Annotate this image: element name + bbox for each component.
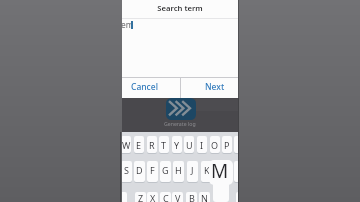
staticText: Y <box>174 139 180 151</box>
button[interactable]: Y <box>172 136 182 153</box>
button[interactable]: F <box>147 161 158 182</box>
button[interactable]: W <box>122 136 131 153</box>
staticText: Z <box>138 192 144 202</box>
staticText: N <box>201 192 208 202</box>
button[interactable]: N <box>199 192 210 202</box>
button[interactable]: B <box>186 192 197 202</box>
button[interactable]: P <box>222 136 232 153</box>
button[interactable] <box>166 98 196 120</box>
button[interactable] <box>234 161 238 182</box>
staticText: O <box>211 139 219 151</box>
button[interactable]: T <box>159 136 169 153</box>
staticText: I <box>200 139 204 151</box>
button[interactable]: I <box>197 136 207 153</box>
staticText: J <box>191 164 194 176</box>
staticText: Cancel <box>131 81 158 93</box>
button[interactable]: X <box>147 192 158 202</box>
staticText: R <box>149 139 155 151</box>
staticText: em <box>122 19 134 31</box>
staticText: G <box>162 164 169 176</box>
button[interactable]: V <box>172 192 183 202</box>
staticText: F <box>150 164 155 176</box>
staticText: P <box>224 139 230 151</box>
staticText: T <box>161 139 167 151</box>
button[interactable] <box>234 136 238 153</box>
staticText: U <box>186 139 193 151</box>
staticText: W <box>122 139 131 151</box>
button[interactable]: C <box>160 192 171 202</box>
button[interactable]: U <box>184 136 194 153</box>
button[interactable]: Cancel <box>124 81 164 93</box>
staticText: E <box>136 139 142 151</box>
button[interactable]: H <box>173 161 184 182</box>
button[interactable]: K <box>201 161 212 182</box>
button[interactable]: J <box>187 161 198 182</box>
button[interactable]: G <box>160 161 171 182</box>
staticText: Search term <box>157 3 203 13</box>
button[interactable]: Z <box>135 192 146 202</box>
staticText: M <box>211 158 229 183</box>
button[interactable]: E <box>134 136 144 153</box>
staticText: D <box>136 164 143 176</box>
staticText: K <box>204 164 210 176</box>
button[interactable]: R <box>147 136 157 153</box>
button[interactable]: Next <box>195 81 235 93</box>
staticText: C <box>163 192 169 202</box>
button[interactable] <box>122 192 127 202</box>
staticText: Next <box>205 81 225 93</box>
button[interactable] <box>236 192 238 202</box>
button[interactable]: D <box>134 161 145 182</box>
button[interactable]: S <box>122 161 132 182</box>
button[interactable]: M <box>209 160 233 185</box>
button[interactable]: O <box>210 136 220 153</box>
staticText: B <box>189 192 195 202</box>
staticText: S <box>124 164 129 176</box>
staticText: Generate log <box>164 120 196 127</box>
staticText: H <box>175 164 182 176</box>
staticText: X <box>150 192 156 202</box>
staticText: V <box>175 192 181 202</box>
